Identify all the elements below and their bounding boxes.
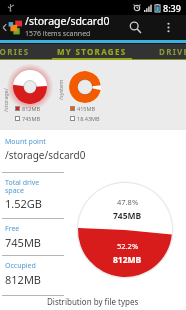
staticText: 1.52GB: [5, 196, 42, 211]
button[interactable]: Search: [120, 15, 151, 40]
staticText: 812MB: [22, 105, 41, 112]
staticText: 52.2%: [117, 241, 139, 251]
staticText: /system: [57, 79, 64, 100]
staticText: /storage/sdcard0: [25, 14, 110, 28]
staticText: CATEGORIES: [0, 46, 30, 57]
button[interactable]: MY STORAGES: [52, 44, 132, 60]
staticText: 745MB: [22, 115, 41, 122]
staticText: Total drive space: [5, 178, 40, 195]
staticText: /storage/sdcard0: [2, 68, 9, 112]
staticText: Distribution by file types: [47, 296, 139, 307]
staticText: 812MB: [113, 254, 142, 266]
staticText: 415MB: [77, 105, 96, 112]
staticText: DRIVES: [159, 46, 186, 57]
staticText: 47.8%: [117, 197, 139, 207]
staticText: 1576 items scanned: [25, 29, 91, 39]
staticText: 8:39: [163, 2, 181, 14]
staticText: 745MB: [113, 210, 142, 222]
staticText: Free: [5, 224, 20, 234]
button[interactable]: CATEGORIES: [0, 44, 40, 60]
staticText: 812MB: [5, 272, 42, 287]
button[interactable]: /storage/sdcard0: [0, 15, 120, 40]
staticText: Occupied: [5, 261, 36, 271]
button[interactable]: More options: [151, 15, 186, 40]
button[interactable]: DRIVES: [137, 44, 186, 60]
staticText: MY STORAGES: [57, 46, 127, 57]
staticText: /storage/sdcard0: [5, 148, 86, 162]
staticText: Mount point: [5, 137, 46, 147]
staticText: 18.43MB: [77, 115, 100, 122]
staticText: 745MB: [5, 235, 42, 250]
